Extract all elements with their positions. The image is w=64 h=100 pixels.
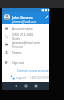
staticText: support · 1 800 555 0199	[16, 76, 49, 80]
button[interactable]: Sign out	[5, 60, 47, 65]
button[interactable]: Connect a new account	[17, 69, 49, 73]
staticText: (555) 212-3455	[12, 33, 34, 37]
staticText: jstevens@mail.com	[12, 41, 40, 45]
button[interactable]: (555) 212-3455	[5, 33, 47, 40]
button[interactable]: Edit	[45, 15, 49, 19]
staticText: John Stevens	[12, 15, 33, 20]
staticText: Personal	[12, 45, 23, 48]
button[interactable]: Teams	[5, 50, 47, 55]
staticText: Connect a new account	[17, 69, 49, 73]
button[interactable]: Home	[24, 84, 28, 88]
button[interactable]: Account name	[5, 26, 47, 31]
button[interactable]: jstevens@mail.com	[5, 41, 47, 48]
staticText: Account name	[12, 27, 33, 31]
button[interactable]: Recents	[34, 84, 38, 88]
staticText: Teams	[12, 51, 22, 55]
button[interactable]: support · 1 800 555 0199	[10, 75, 49, 80]
staticText: jstevens@mail.com	[12, 20, 37, 24]
button[interactable]: Back	[14, 84, 18, 88]
staticText: Mobile	[12, 37, 21, 40]
staticText: Sign out	[12, 61, 25, 65]
